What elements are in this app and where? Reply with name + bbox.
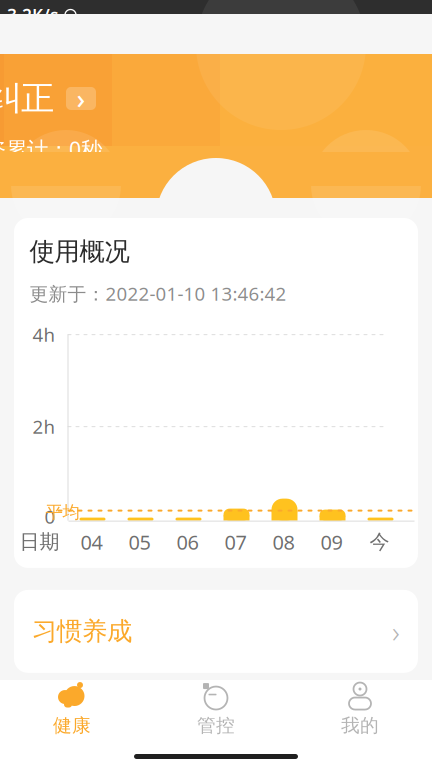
button[interactable]: 我的 xyxy=(288,681,432,737)
staticText: 07 xyxy=(224,529,246,555)
button[interactable]: 健康 xyxy=(0,681,144,737)
button[interactable]: 习惯养成 xyxy=(14,590,418,673)
staticText: 健康 xyxy=(53,714,91,737)
staticText: › xyxy=(392,612,400,651)
staticText: 平均 xyxy=(45,502,79,523)
staticText: 05 xyxy=(128,529,150,555)
button[interactable]: 管控 xyxy=(144,681,288,737)
button[interactable]: 坐姿纠正 xyxy=(0,78,96,119)
staticText: 更新于：2022-01-10 13:46:42 xyxy=(29,281,286,306)
staticText: › xyxy=(76,81,85,116)
staticText: 06 xyxy=(176,529,198,555)
staticText: 习惯养成 xyxy=(32,616,132,647)
staticText: 日期 xyxy=(19,530,59,554)
staticText: 坐姿纠正 xyxy=(0,78,54,119)
staticText: 08 xyxy=(272,529,294,555)
staticText: 下午1:46 | 3.2K/s xyxy=(0,3,59,26)
staticText: 不良坐姿累计：0秒 xyxy=(0,135,102,163)
staticText: 今 xyxy=(369,530,389,554)
staticText: 09 xyxy=(320,529,342,555)
staticText: 2h xyxy=(32,414,55,439)
staticText: 0 xyxy=(44,504,55,529)
staticText: 4h xyxy=(32,322,55,347)
staticText: 使用概况 xyxy=(29,236,129,267)
staticText: 我的 xyxy=(341,714,379,737)
staticText: 管控 xyxy=(197,714,235,737)
staticText: 04 xyxy=(80,529,102,555)
